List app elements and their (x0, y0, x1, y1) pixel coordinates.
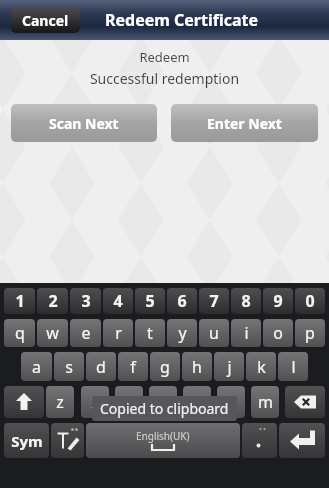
button[interactable]: s (54, 352, 84, 381)
button[interactable]: 0 (295, 288, 325, 314)
button[interactable]: j (214, 352, 244, 381)
staticText: f (130, 356, 136, 378)
staticText: j (227, 356, 232, 378)
staticText: o (273, 322, 283, 344)
button[interactable]: 7 (199, 288, 229, 314)
staticText: q (15, 322, 25, 344)
button[interactable]: c (115, 386, 143, 418)
staticText: 5 (145, 290, 155, 312)
staticText: p (305, 322, 315, 344)
button[interactable]: m (251, 386, 279, 418)
button[interactable]: 9 (263, 288, 293, 314)
button[interactable]: Enter Next (171, 104, 318, 142)
button[interactable]: y (167, 319, 197, 347)
staticText: Sym (11, 431, 43, 451)
staticText: 9 (273, 290, 283, 312)
staticText: Cancel (22, 11, 69, 30)
button[interactable]: k (246, 352, 276, 381)
button[interactable]: e (70, 319, 101, 347)
button[interactable]: Scan Next (11, 104, 157, 142)
staticText: n (226, 391, 236, 413)
staticText: 4 (113, 290, 123, 312)
staticText: 2 (48, 290, 58, 312)
button[interactable]: 4 (103, 288, 133, 314)
button[interactable]: g (150, 352, 180, 381)
button[interactable]: 6 (167, 288, 197, 314)
button[interactable]: Enter (279, 423, 325, 458)
staticText: m (258, 391, 273, 413)
button[interactable]: 3 (70, 288, 101, 314)
staticText: c (125, 391, 133, 413)
staticText: 0 (305, 290, 315, 312)
staticText: 1 (15, 290, 25, 312)
button[interactable]: b (183, 386, 211, 418)
staticText: r (115, 322, 122, 344)
staticText: e (81, 322, 91, 344)
button[interactable]: Period (242, 423, 277, 458)
button[interactable]: v (149, 386, 177, 418)
staticText: Copied to clipboard (100, 399, 229, 418)
button[interactable]: d (86, 352, 116, 381)
staticText: w (46, 322, 59, 344)
staticText: y (178, 322, 187, 344)
staticText: Scan Next (49, 114, 119, 133)
staticText: 6 (177, 290, 187, 312)
button[interactable]: n (217, 386, 245, 418)
button[interactable]: x (81, 386, 109, 418)
staticText: l (291, 356, 296, 378)
staticText: t (147, 322, 153, 344)
button[interactable]: w (37, 319, 68, 347)
staticText: Redeem (0, 48, 329, 66)
button[interactable]: p (295, 319, 325, 347)
staticText: u (209, 322, 219, 344)
staticText: English(UK) (136, 429, 190, 443)
button[interactable]: q (4, 319, 35, 347)
staticText: a (32, 356, 41, 378)
button[interactable]: Sym (4, 423, 49, 458)
button[interactable]: f (118, 352, 148, 381)
button[interactable]: 5 (135, 288, 165, 314)
button[interactable]: r (103, 319, 133, 347)
button[interactable]: Backspace (285, 386, 325, 418)
button[interactable]: h (182, 352, 212, 381)
button[interactable]: 1 (4, 288, 35, 314)
staticText: Redeem Certificate (105, 9, 259, 31)
button[interactable]: 8 (231, 288, 261, 314)
staticText: k (257, 356, 266, 378)
staticText: d (96, 356, 106, 378)
staticText: 8 (241, 290, 251, 312)
staticText: g (160, 356, 170, 378)
staticText: h (192, 356, 202, 378)
staticText: Enter Next (207, 114, 282, 133)
button[interactable]: z (46, 386, 74, 418)
button[interactable]: a (21, 352, 52, 381)
staticText: s (65, 356, 73, 378)
button[interactable]: Space, English UK (86, 423, 240, 458)
staticText: 7 (209, 290, 219, 312)
button[interactable]: u (199, 319, 229, 347)
staticText: x (91, 391, 100, 413)
staticText: 3 (81, 290, 91, 312)
button[interactable]: t (135, 319, 165, 347)
staticText: Successful redemption (0, 69, 329, 88)
button[interactable]: o (263, 319, 293, 347)
button[interactable]: Input method (51, 423, 84, 458)
staticText: b (192, 391, 202, 413)
button[interactable]: 2 (37, 288, 68, 314)
button[interactable]: Cancel (11, 8, 80, 33)
button[interactable]: Shift (4, 386, 44, 418)
button[interactable]: l (278, 352, 308, 381)
button[interactable]: i (231, 319, 261, 347)
staticText: i (244, 322, 249, 344)
staticText: v (159, 391, 168, 413)
staticText: z (56, 391, 64, 413)
